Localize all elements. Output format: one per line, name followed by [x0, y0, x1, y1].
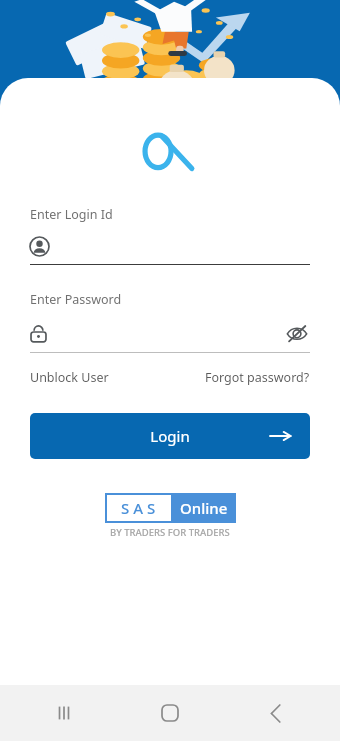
button[interactable]: Back — [256, 693, 296, 733]
button[interactable]: Home — [150, 693, 190, 733]
staticText: BY TRADERS FOR TRADERS — [110, 526, 230, 539]
staticText: Login — [150, 426, 190, 446]
staticText: Enter Login Id — [30, 206, 113, 223]
staticText: Enter Password — [30, 291, 122, 308]
staticText: Unblock User — [30, 369, 109, 386]
staticText: S A S — [121, 498, 156, 518]
button[interactable]: Show password — [284, 320, 310, 346]
button[interactable]: Unblock User — [30, 369, 109, 386]
button[interactable]: Forgot password? — [205, 369, 310, 386]
staticText: Forgot password? — [205, 369, 310, 386]
staticText: Online — [180, 498, 228, 518]
button[interactable]: Recent apps — [44, 693, 84, 733]
button[interactable]: Login — [30, 413, 310, 459]
